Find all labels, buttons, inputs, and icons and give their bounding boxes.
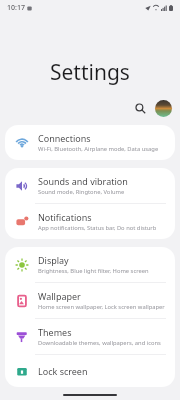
staticText: Wi-Fi, Bluetooth, Airplane mode, Data us… (38, 145, 159, 153)
button[interactable]: Lock screen (5, 355, 175, 387)
staticText: Notifications (38, 211, 92, 223)
staticText: Sound mode, Ringtone, Volume (38, 188, 125, 196)
staticText: Sounds and vibration (38, 175, 128, 187)
staticText: Themes (38, 326, 72, 338)
button[interactable]: Connections (5, 125, 175, 160)
button[interactable]: Search settings (130, 98, 150, 118)
button[interactable]: Themes (5, 319, 175, 354)
button[interactable]: Samsung account (153, 98, 173, 118)
button[interactable]: Notifications (5, 204, 175, 239)
staticText: Display (38, 254, 69, 266)
button[interactable]: Display (5, 247, 175, 282)
staticText: Connections (38, 132, 91, 144)
staticText: Home screen wallpaper, Lock screen wallp… (38, 303, 165, 311)
staticText: Lock screen (38, 365, 88, 377)
staticText: Wallpaper (38, 290, 81, 302)
staticText: Settings (50, 58, 130, 87)
staticText: Brightness, Blue light filter, Home scre… (38, 267, 149, 275)
button[interactable]: Sounds and vibration (5, 168, 175, 203)
staticText: 10:17 (7, 3, 25, 13)
staticText: App notifications, Status bar, Do not di… (38, 224, 157, 232)
staticText: Downloadable themes, wallpapers, and ico… (38, 339, 161, 347)
button[interactable]: Wallpaper (5, 283, 175, 318)
